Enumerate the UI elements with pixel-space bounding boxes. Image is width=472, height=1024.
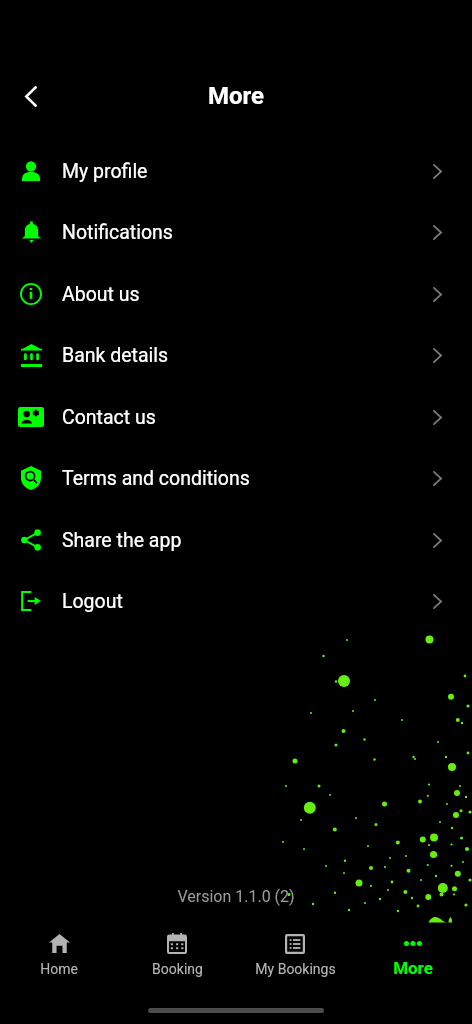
button[interactable]: Booking (118, 923, 236, 1024)
staticText: Contact us (62, 406, 156, 429)
button[interactable]: Notifications (0, 201, 472, 263)
button[interactable]: More (354, 923, 472, 1024)
button[interactable]: About us (0, 263, 472, 325)
staticText: More (393, 958, 433, 978)
staticText: My profile (62, 160, 148, 183)
staticText: More (0, 82, 472, 110)
button[interactable]: My profile (0, 140, 472, 202)
button[interactable]: Share the app (0, 509, 472, 571)
button[interactable]: Contact us (0, 386, 472, 448)
button[interactable]: Home (0, 923, 118, 1024)
button[interactable]: Logout (0, 570, 472, 632)
staticText: My Bookings (255, 961, 336, 977)
button[interactable]: My Bookings (236, 923, 354, 1024)
staticText: Logout (62, 590, 123, 613)
staticText: Notifications (62, 221, 173, 244)
button[interactable]: Bank details (0, 324, 472, 386)
staticText: About us (62, 283, 140, 306)
staticText: Bank details (62, 344, 169, 367)
staticText: Share the app (62, 529, 182, 552)
staticText: Booking (152, 961, 203, 977)
staticText: Home (40, 961, 78, 977)
staticText: Terms and conditions (62, 467, 250, 490)
button[interactable]: Back (11, 76, 51, 116)
button[interactable]: Terms and conditions (0, 447, 472, 509)
staticText: Version 1.1.0 (2) (0, 887, 472, 906)
